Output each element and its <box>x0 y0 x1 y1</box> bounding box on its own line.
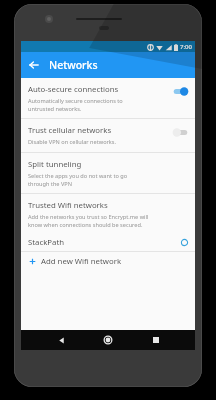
staticText: Disable VPN on cellular networks. <box>28 138 116 146</box>
staticText: Add new Wifi network <box>41 256 122 267</box>
staticText: Trusted Wifi networks <box>28 200 108 211</box>
staticText: Trust cellular networks <box>28 125 112 136</box>
staticText: Automatically secure connections to untr… <box>28 97 123 112</box>
button[interactable]: Back <box>25 56 43 74</box>
staticText: Add the networks you trust so Encrypt.me… <box>28 213 149 228</box>
staticText: Networks <box>49 58 98 72</box>
staticText: StackPath <box>28 237 181 248</box>
staticText: 7:00 <box>180 43 192 51</box>
button[interactable]: Recent apps <box>148 332 164 348</box>
button[interactable]: Add new Wifi network <box>21 252 195 270</box>
button[interactable]: Auto-secure connections <box>21 78 195 118</box>
staticText: Select the apps you do not want to go th… <box>28 172 128 187</box>
button[interactable]: Toggle off <box>172 127 189 138</box>
button[interactable]: Toggle on <box>172 86 189 97</box>
staticText: Auto-secure connections <box>28 84 119 95</box>
button[interactable]: Split tunneling <box>21 153 195 193</box>
button[interactable]: StackPath <box>21 234 195 251</box>
button[interactable]: Back <box>53 332 69 348</box>
button[interactable]: Trusted Wifi networks <box>21 194 195 234</box>
button[interactable]: Trust cellular networks <box>21 119 195 152</box>
staticText: Split tunneling <box>28 159 82 170</box>
button[interactable]: Home <box>100 332 116 348</box>
